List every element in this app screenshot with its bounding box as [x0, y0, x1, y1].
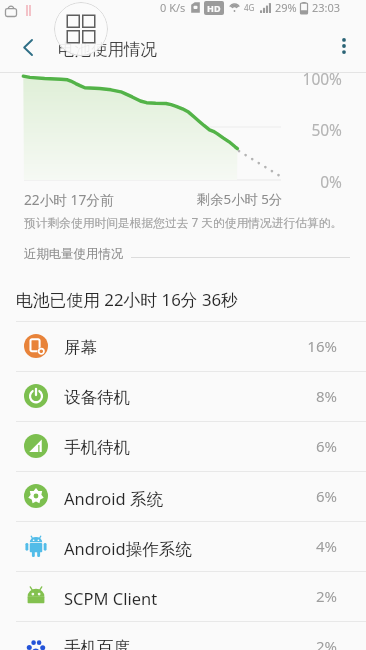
staticText: 2%	[0, 636, 337, 650]
staticText: 6%	[0, 486, 337, 506]
staticText: 6%	[0, 436, 337, 456]
button[interactable]: Android 系统	[0, 471, 366, 521]
staticText: 屏幕	[64, 337, 97, 358]
staticText: 16%	[0, 336, 337, 356]
staticText: 4G	[244, 2, 255, 13]
button[interactable]: More options	[322, 21, 366, 71]
staticText: 剩余5小时 5分	[197, 190, 283, 208]
staticText: 手机待机	[64, 437, 130, 458]
staticText: 设备待机	[64, 387, 130, 408]
button[interactable]: 屏幕	[0, 321, 366, 371]
staticText: 0 K/s	[160, 0, 186, 15]
staticText: SCPM Client	[64, 587, 158, 609]
button[interactable]: Android操作系统	[0, 521, 366, 571]
staticText: 电池使用情况	[58, 39, 157, 60]
staticText: Android 系统	[64, 487, 164, 510]
button[interactable]: SCPM Client	[0, 571, 366, 621]
staticText: 29%	[275, 0, 297, 15]
staticText: 50%	[0, 119, 342, 140]
staticText: 手机百度	[64, 637, 130, 650]
button[interactable]: 设备待机	[0, 371, 366, 421]
staticText: 8%	[0, 386, 337, 406]
staticText: 2%	[0, 586, 337, 606]
staticText: 电池已使用 22小时 16分 36秒	[16, 288, 238, 311]
staticText: HD	[207, 2, 221, 14]
button[interactable]: 手机待机	[0, 421, 366, 471]
staticText: 近期电量使用情况	[24, 246, 124, 262]
button[interactable]: 手机百度	[0, 621, 366, 650]
staticText: 预计剩余使用时间是根据您过去 7 天的使用情况进行估算的。	[24, 214, 343, 230]
staticText: 22小时 17分前	[24, 190, 114, 209]
staticText: Android操作系统	[64, 537, 192, 560]
staticText: 0%	[0, 171, 342, 192]
staticText: 4%	[0, 536, 337, 556]
button[interactable]: Back	[5, 23, 50, 71]
staticText: 100%	[0, 73, 342, 89]
staticText: 23:03	[312, 0, 341, 15]
button[interactable]: Assistive menu	[54, 2, 108, 56]
